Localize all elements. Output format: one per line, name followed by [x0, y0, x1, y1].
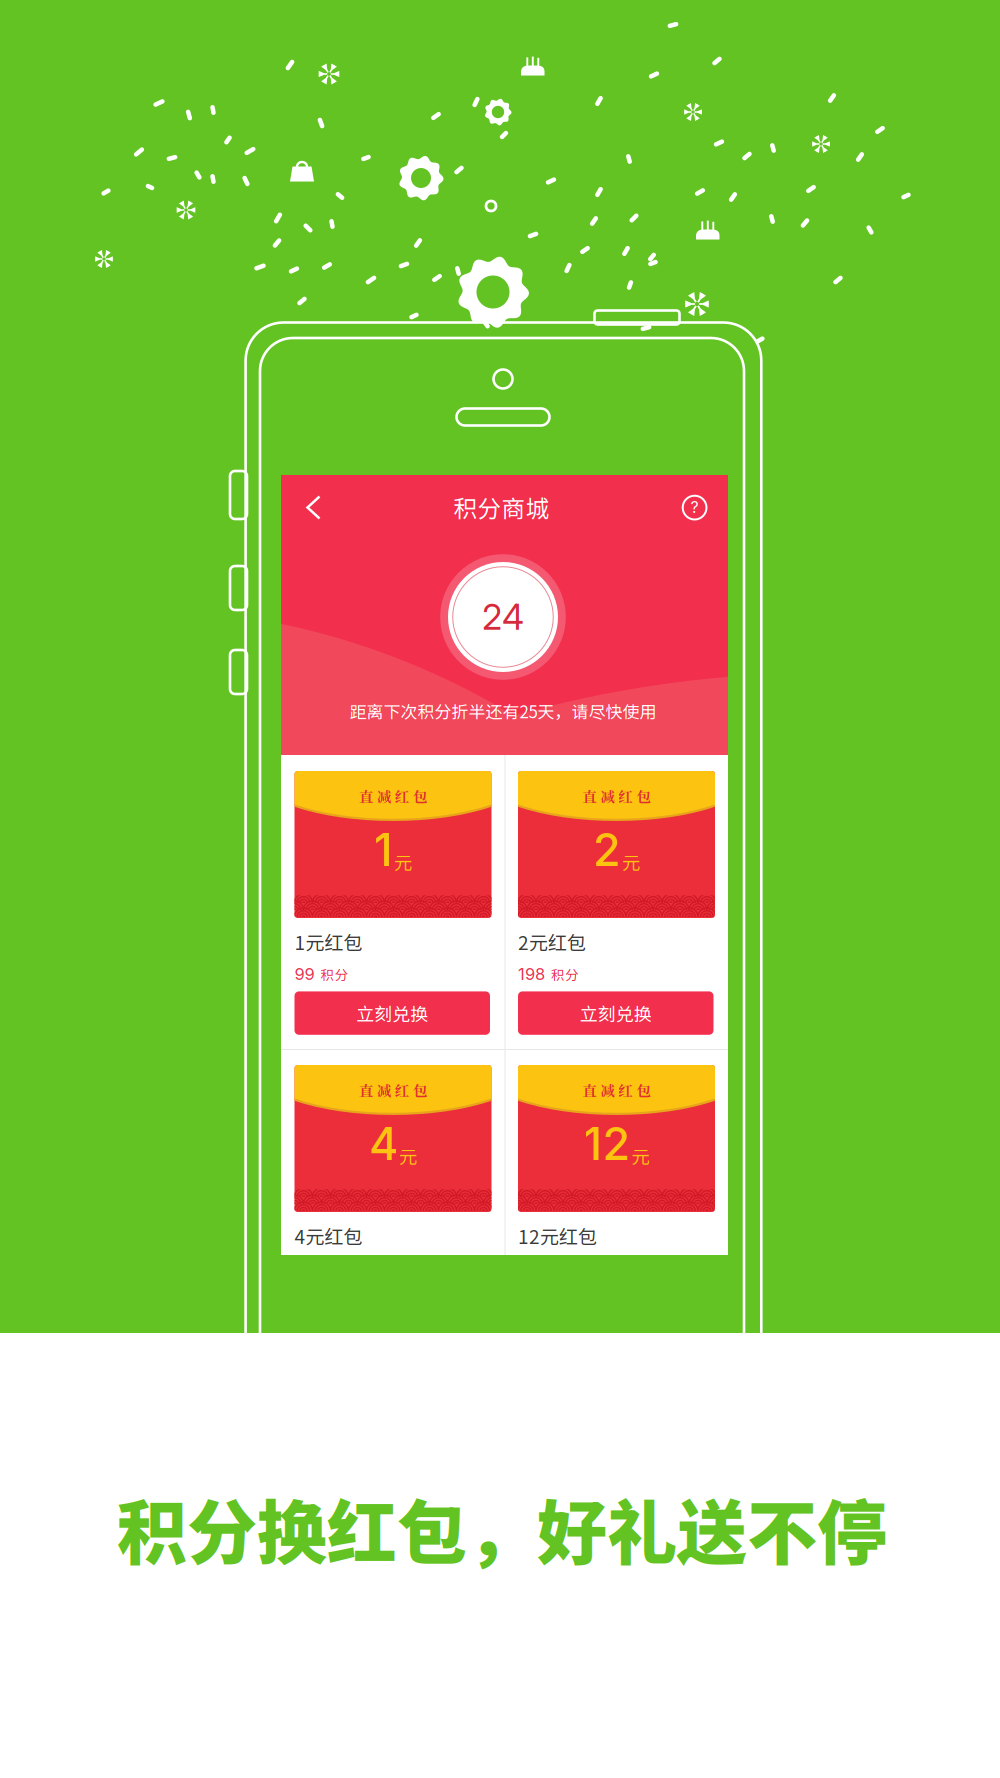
staticText: 减 — [600, 1080, 614, 1100]
staticText: 减 — [377, 1080, 391, 1100]
staticText: 1元红包 — [294, 928, 362, 955]
staticText: 元 — [631, 1142, 649, 1169]
staticText: 4 — [369, 1116, 398, 1171]
staticText: 12元红包 — [518, 1222, 597, 1249]
staticText: 红 — [395, 786, 409, 806]
staticText: 距离下次积分折半还有25天，请尽快使用 — [349, 699, 656, 723]
staticText: 积分换红包，好礼送不停 — [117, 1477, 887, 1579]
staticText: 198 — [518, 964, 545, 984]
staticText: 减 — [377, 786, 391, 806]
staticText: 1 — [374, 822, 393, 877]
staticText: 元 — [399, 1142, 417, 1169]
staticText: 2 — [593, 822, 621, 877]
staticText: 24 — [482, 596, 524, 638]
staticText: 4元红包 — [294, 1222, 362, 1249]
staticText: 红 — [395, 1080, 409, 1100]
staticText: 立刻兑换 — [580, 1000, 652, 1026]
button[interactable]: 立刻兑换 — [294, 991, 490, 1035]
staticText: 红 — [619, 786, 633, 806]
button[interactable]: 帮助 — [674, 487, 716, 529]
staticText: ? — [691, 497, 699, 517]
staticText: 直 — [359, 1080, 373, 1100]
staticText: 包 — [413, 1080, 427, 1100]
staticText: 直 — [582, 1080, 596, 1100]
staticText: 积分商城 — [453, 490, 549, 524]
staticText: 红 — [619, 1080, 633, 1100]
staticText: 积分 — [320, 964, 348, 984]
staticText: 直 — [582, 786, 596, 806]
staticText: 元 — [622, 848, 640, 875]
staticText: 立刻兑换 — [356, 1000, 428, 1026]
staticText: 99 — [294, 964, 314, 984]
staticText: 包 — [637, 786, 651, 806]
button[interactable]: 返回 — [295, 487, 337, 528]
staticText: 直 — [359, 786, 373, 806]
staticText: 减 — [600, 786, 614, 806]
staticText: 包 — [413, 786, 427, 806]
staticText: 12 — [583, 1116, 630, 1171]
staticText: 包 — [637, 1080, 651, 1100]
staticText: 积分 — [551, 964, 579, 984]
button[interactable]: 立刻兑换 — [518, 991, 713, 1035]
staticText: 2元红包 — [518, 928, 586, 955]
staticText: 元 — [394, 848, 412, 875]
